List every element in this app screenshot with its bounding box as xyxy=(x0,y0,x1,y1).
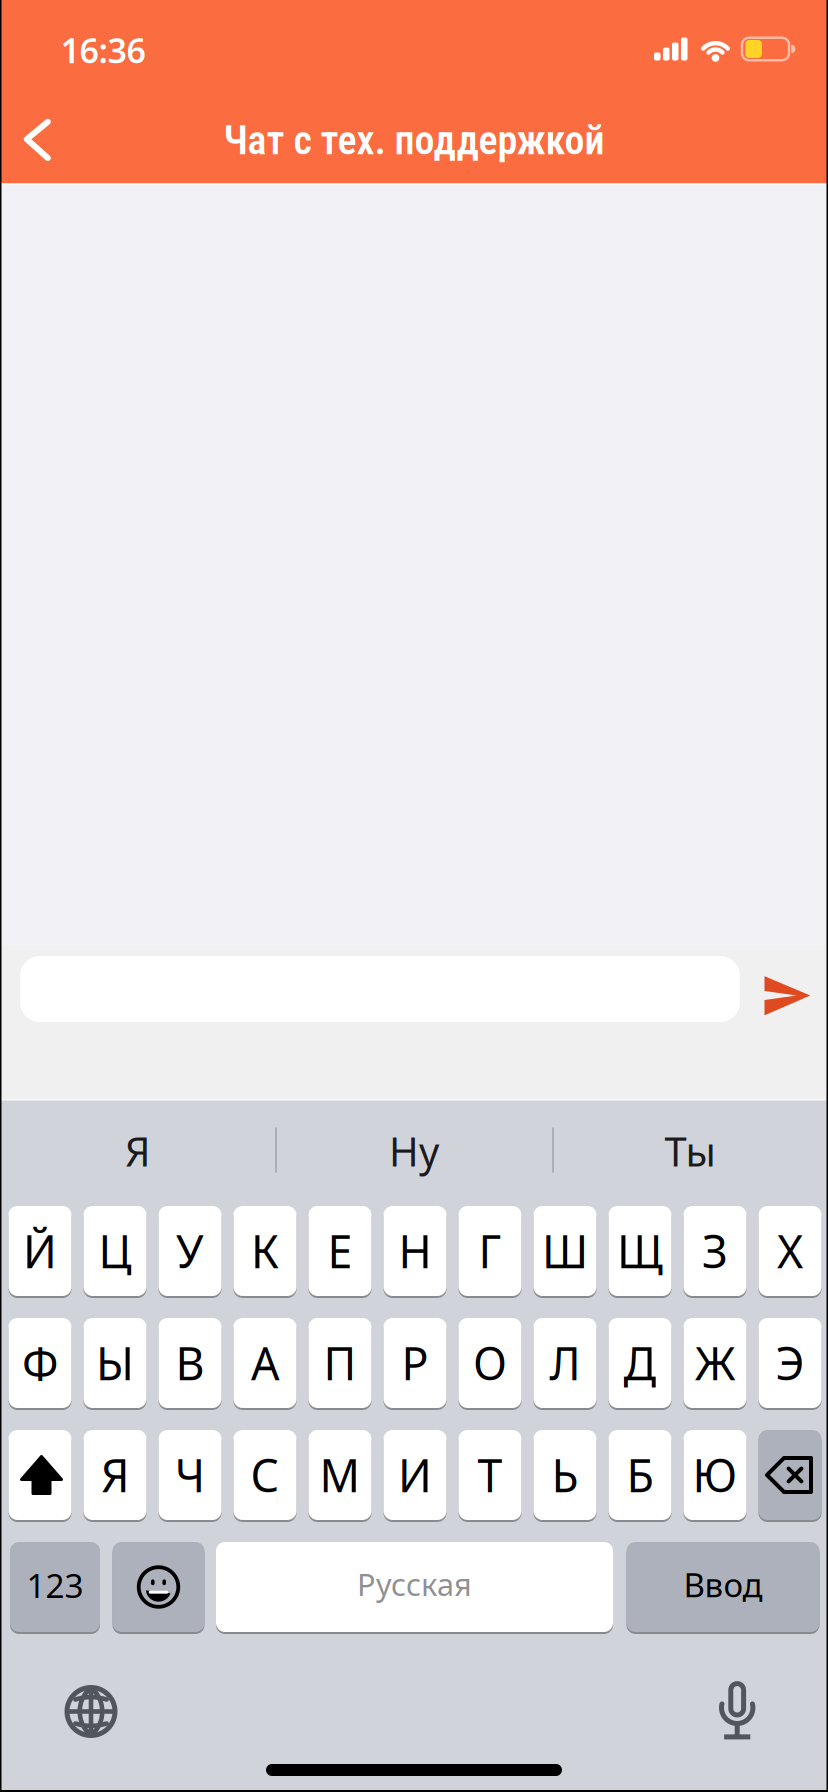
button[interactable]: Э xyxy=(758,1317,821,1409)
staticText: Ь xyxy=(551,1439,578,1511)
staticText: 16:36 xyxy=(60,22,145,77)
button[interactable]: Send xyxy=(764,976,810,1016)
staticText: Л xyxy=(549,1327,580,1399)
button[interactable]: Next keyboard xyxy=(62,1682,120,1740)
button[interactable]: Я xyxy=(83,1429,146,1521)
staticText: Т xyxy=(477,1439,502,1511)
button[interactable]: Щ xyxy=(608,1205,671,1297)
button[interactable]: Д xyxy=(608,1317,671,1409)
button[interactable]: К xyxy=(233,1205,296,1297)
staticText: И xyxy=(398,1439,432,1511)
staticText: Ну xyxy=(389,1119,439,1183)
button[interactable]: Е xyxy=(308,1205,371,1297)
button[interactable]: У xyxy=(158,1205,221,1297)
button[interactable]: Shift xyxy=(8,1429,71,1521)
button[interactable]: Back xyxy=(21,115,54,161)
staticText: Ф xyxy=(22,1327,58,1399)
staticText: Б xyxy=(626,1439,653,1511)
button[interactable]: Ч xyxy=(158,1429,221,1521)
staticText: У xyxy=(176,1215,204,1287)
button[interactable]: Ц xyxy=(83,1205,146,1297)
staticText: Х xyxy=(777,1215,803,1287)
staticText: Чат с тех. поддержкой xyxy=(223,113,604,168)
staticText: Э xyxy=(775,1327,804,1399)
staticText: 123 xyxy=(26,1558,83,1612)
button[interactable]: Т xyxy=(458,1429,521,1521)
button[interactable]: Ш xyxy=(533,1205,596,1297)
button[interactable]: Ввод xyxy=(626,1541,819,1633)
staticText: Г xyxy=(478,1215,501,1287)
staticText: Д xyxy=(623,1327,656,1399)
button[interactable]: 123 xyxy=(10,1541,100,1633)
button[interactable]: Delete xyxy=(758,1429,821,1521)
button[interactable]: О xyxy=(458,1317,521,1409)
button[interactable]: З xyxy=(683,1205,746,1297)
button[interactable]: Р xyxy=(383,1317,446,1409)
button[interactable]: Ну xyxy=(279,1101,549,1201)
button[interactable]: В xyxy=(158,1317,221,1409)
button[interactable]: С xyxy=(233,1429,296,1521)
button[interactable]: Ты xyxy=(555,1101,825,1201)
button[interactable]: Ы xyxy=(83,1317,146,1409)
button[interactable]: Н xyxy=(383,1205,446,1297)
button[interactable]: А xyxy=(233,1317,296,1409)
button[interactable]: П xyxy=(308,1317,371,1409)
button[interactable]: Ю xyxy=(683,1429,746,1521)
staticText: З xyxy=(702,1215,728,1287)
staticText: Ц xyxy=(98,1215,131,1287)
staticText: Я xyxy=(125,1119,151,1183)
button[interactable]: Й xyxy=(8,1205,71,1297)
staticText: Ввод xyxy=(683,1558,762,1611)
button[interactable]: Х xyxy=(758,1205,821,1297)
button[interactable]: Ф xyxy=(8,1317,71,1409)
staticText: Ж xyxy=(695,1327,735,1399)
button[interactable]: Dictation xyxy=(716,1679,758,1741)
staticText: В xyxy=(175,1327,204,1399)
staticText: Я xyxy=(101,1439,129,1511)
button[interactable]: Emoji xyxy=(112,1541,204,1633)
staticText: Русская xyxy=(357,1559,472,1609)
staticText: Ты xyxy=(664,1119,715,1183)
button[interactable]: Б xyxy=(608,1429,671,1521)
button[interactable]: Г xyxy=(458,1205,521,1297)
staticText: Е xyxy=(327,1215,352,1287)
staticText: С xyxy=(250,1439,279,1511)
staticText: О xyxy=(473,1327,507,1399)
staticText: М xyxy=(319,1439,360,1511)
staticText: Щ xyxy=(617,1215,663,1287)
staticText: Ш xyxy=(542,1215,588,1287)
button[interactable]: М xyxy=(308,1429,371,1521)
button[interactable]: И xyxy=(383,1429,446,1521)
staticText: Ы xyxy=(96,1327,134,1399)
staticText: Ч xyxy=(175,1439,205,1511)
button[interactable]: Русская xyxy=(216,1541,613,1633)
staticText: Ю xyxy=(692,1439,737,1511)
staticText: А xyxy=(251,1327,279,1399)
staticText: Р xyxy=(401,1327,428,1399)
button[interactable]: Ж xyxy=(683,1317,746,1409)
staticText: К xyxy=(251,1215,279,1287)
staticText: Н xyxy=(398,1215,431,1287)
staticText: Й xyxy=(23,1215,57,1287)
button[interactable]: Ь xyxy=(533,1429,596,1521)
button[interactable]: Л xyxy=(533,1317,596,1409)
staticText: П xyxy=(323,1327,356,1399)
button[interactable]: Я xyxy=(3,1101,273,1201)
